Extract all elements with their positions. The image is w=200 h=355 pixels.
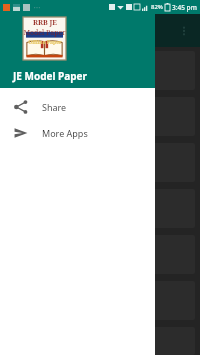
button[interactable]: More Apps	[0, 120, 155, 146]
staticText: 82%	[151, 3, 163, 11]
button[interactable]: Share	[0, 94, 155, 120]
button[interactable]: Paper 1	[5, 51, 195, 90]
button[interactable]: Paper 7	[5, 327, 195, 355]
button[interactable]: Paper 3	[5, 143, 195, 182]
staticText: Paper 2	[16, 109, 58, 124]
staticText: Share	[42, 101, 67, 113]
staticText: Paper 1	[16, 63, 58, 78]
staticText: RRB JE	[33, 18, 57, 28]
staticText: JE Model Paper	[13, 69, 88, 83]
button[interactable]: Paper 4	[5, 189, 195, 228]
button[interactable]: Paper 2	[5, 97, 195, 136]
button[interactable]: Paper 6	[5, 281, 195, 320]
staticText: More Apps	[42, 127, 88, 139]
staticText: Offline Paper	[28, 39, 62, 46]
staticText: 3:45 pm	[172, 3, 197, 12]
button[interactable]: Paper 5	[5, 235, 195, 274]
staticText: Model Paper	[23, 28, 66, 38]
button[interactable]: More options	[174, 21, 194, 41]
